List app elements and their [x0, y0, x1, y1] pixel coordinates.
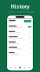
staticText: Track your recent orders and activity [6, 11, 33, 13]
button[interactable]: Cart [22, 67, 27, 68]
button[interactable]: History [18, 67, 22, 68]
button[interactable] [7, 45, 33, 50]
staticText: History [10, 3, 29, 10]
button[interactable] [7, 30, 33, 35]
button[interactable]: Home [8, 67, 13, 68]
button[interactable]: New order [24, 20, 31, 22]
button[interactable]: Search [13, 67, 18, 68]
button[interactable] [7, 35, 33, 40]
button[interactable] [7, 24, 33, 29]
button[interactable]: Profile [27, 67, 32, 68]
button[interactable] [7, 51, 33, 56]
button[interactable] [7, 40, 33, 45]
